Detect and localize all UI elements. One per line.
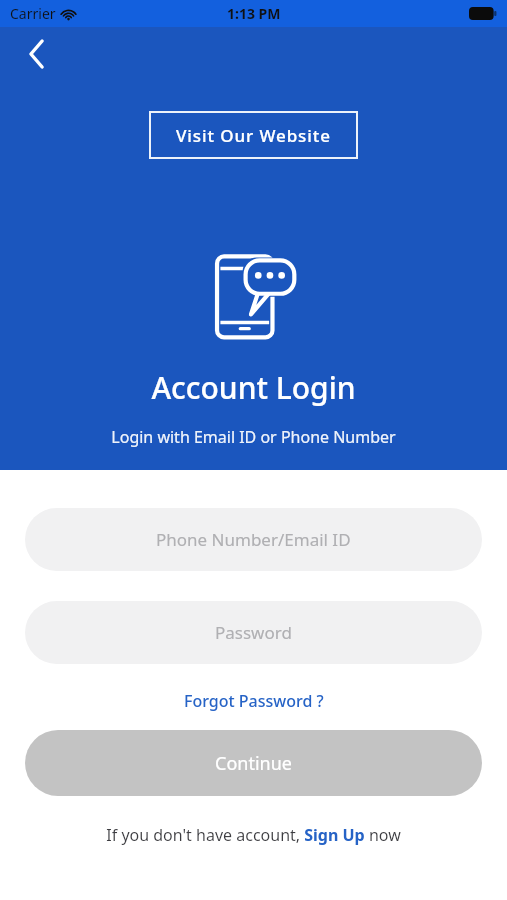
staticText: If you don't have account, Sign Up now	[106, 824, 401, 846]
staticText: Account Login	[0, 367, 507, 408]
button[interactable]: Back	[9, 27, 65, 81]
button[interactable]: Visit Our Website	[149, 111, 358, 159]
staticText: Login with Email ID or Phone Number	[0, 426, 507, 448]
staticText: Forgot Password ?	[184, 690, 324, 712]
staticText: Continue	[215, 751, 292, 776]
staticText: Password	[215, 621, 292, 644]
staticText: Phone Number/Email ID	[156, 528, 351, 551]
staticText: Visit Our Website	[176, 124, 331, 147]
button[interactable]: Continue	[25, 730, 482, 796]
staticText: Carrier	[10, 4, 56, 23]
staticText: 1:13 PM	[227, 4, 281, 23]
button[interactable]: Password	[25, 601, 482, 664]
button[interactable]: Phone Number/Email ID	[25, 508, 482, 571]
button[interactable]: Forgot Password ?	[176, 687, 332, 715]
button[interactable]: If you don't have account, Sign Up now	[98, 821, 409, 849]
